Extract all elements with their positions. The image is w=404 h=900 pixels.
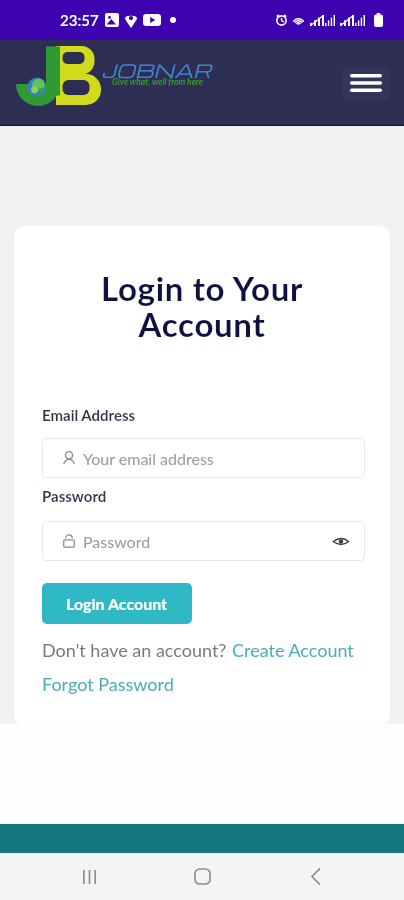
button[interactable]: Login Account [42, 583, 192, 624]
staticText: Login to Your Account [14, 268, 390, 344]
button[interactable]: Password [42, 521, 365, 561]
staticText: Email Address [42, 406, 136, 424]
staticText: 23:57 [60, 11, 99, 29]
button[interactable]: Show password [331, 531, 351, 551]
button[interactable]: Create Account [232, 639, 354, 661]
staticText: Give what, well from here [112, 77, 203, 87]
button[interactable]: Your email address [42, 438, 365, 478]
button[interactable]: Recent apps [64, 853, 114, 900]
staticText: Don't have an account? [42, 639, 232, 661]
staticText: Password [83, 532, 151, 551]
staticText: Password [42, 487, 107, 505]
button[interactable]: Menu [342, 65, 390, 101]
staticText: Forgot Password [42, 673, 174, 695]
button[interactable]: Back [291, 853, 341, 900]
staticText: JOBNAR [101, 57, 212, 83]
button[interactable]: Forgot Password [42, 673, 174, 695]
staticText: Login Account [66, 594, 168, 613]
staticText: Create Account [232, 639, 354, 661]
staticText: Your email address [83, 449, 214, 468]
button[interactable]: Home [177, 853, 227, 900]
